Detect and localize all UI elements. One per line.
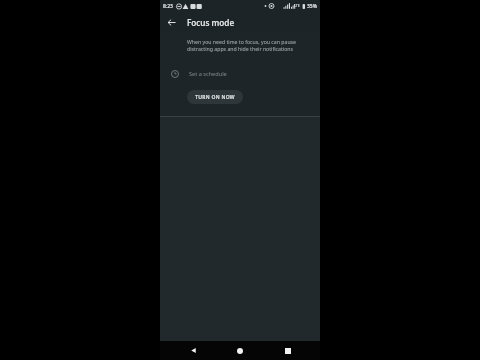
staticText: Set a schedule [189,70,227,78]
staticText: Focus mode [187,17,235,28]
staticText: 8:23 [163,3,173,10]
staticText: LTE [294,3,300,8]
button[interactable]: TURN ON NOW [187,90,243,104]
other: Schedule [169,68,181,80]
button[interactable]: Back [163,14,179,30]
button[interactable]: Recent apps [273,341,303,360]
button[interactable]: Schedule [160,64,320,84]
staticText: When you need time to focus, you can pau… [187,38,302,52]
button[interactable]: Back [178,341,208,360]
button[interactable]: Home [225,341,255,360]
staticText: 35% [307,3,317,10]
staticText: TURN ON NOW [195,94,235,101]
